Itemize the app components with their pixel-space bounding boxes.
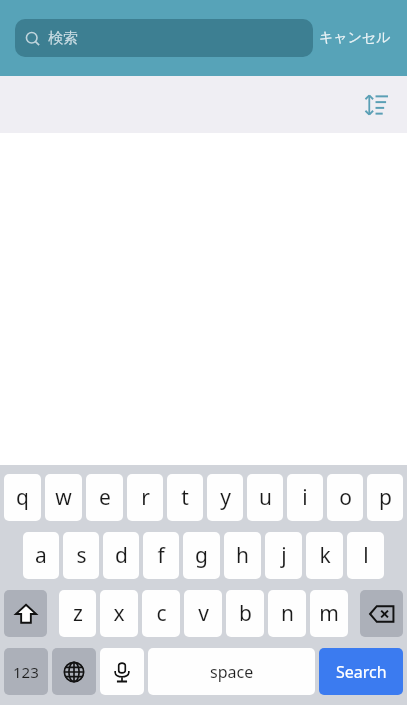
staticText: p (379, 483, 392, 512)
button[interactable]: l (347, 532, 384, 579)
button[interactable]: t (167, 474, 203, 521)
staticText: t (181, 483, 189, 512)
button[interactable]: n (268, 590, 306, 637)
button[interactable]: s (63, 532, 99, 579)
button[interactable]: c (142, 590, 180, 637)
staticText: キャンセル (319, 29, 391, 47)
button[interactable]: m (310, 590, 348, 637)
staticText: d (115, 541, 128, 570)
button[interactable]: k (306, 532, 343, 579)
button[interactable]: q (4, 474, 41, 521)
staticText: g (195, 541, 208, 570)
button[interactable]: e (86, 474, 123, 521)
staticText: k (319, 541, 331, 570)
staticText: q (16, 483, 29, 512)
button[interactable]: o (327, 474, 363, 521)
button[interactable]: f (143, 532, 179, 579)
staticText: u (259, 483, 272, 512)
staticText: b (239, 599, 252, 628)
staticText: i (302, 483, 308, 512)
button[interactable]: h (224, 532, 261, 579)
button[interactable]: y (207, 474, 243, 521)
staticText: a (35, 541, 47, 570)
button[interactable]: Search (319, 648, 403, 695)
button[interactable]: b (226, 590, 264, 637)
staticText: f (157, 541, 165, 570)
button[interactable]: x (100, 590, 138, 637)
staticText: y (220, 483, 231, 512)
staticText: 検索 (48, 29, 78, 48)
button[interactable]: j (265, 532, 302, 579)
button[interactable]: z (59, 590, 96, 637)
button[interactable]: d (103, 532, 139, 579)
button[interactable]: Voice input (100, 648, 144, 695)
button[interactable]: Shift (4, 590, 47, 637)
button[interactable]: Change language (52, 648, 96, 695)
staticText: m (319, 599, 339, 628)
staticText: 123 (13, 662, 39, 682)
staticText: s (76, 541, 87, 570)
button[interactable]: Sort (359, 88, 393, 122)
staticText: n (281, 599, 294, 628)
staticText: e (99, 483, 111, 512)
button[interactable]: 検索 (15, 19, 313, 57)
button[interactable]: g (183, 532, 220, 579)
button[interactable]: space (148, 648, 315, 695)
staticText: x (113, 599, 125, 628)
button[interactable]: p (367, 474, 403, 521)
staticText: w (55, 483, 72, 512)
staticText: j (281, 541, 287, 570)
button[interactable]: キャンセル (319, 29, 391, 47)
staticText: c (156, 599, 167, 628)
button[interactable]: Backspace (360, 590, 403, 637)
staticText: Search (336, 661, 387, 683)
staticText: z (73, 599, 83, 628)
button[interactable]: a (23, 532, 59, 579)
button[interactable]: r (127, 474, 163, 521)
button[interactable]: v (184, 590, 222, 637)
staticText: o (339, 483, 352, 512)
staticText: l (363, 541, 369, 570)
staticText: space (210, 661, 254, 683)
button[interactable]: u (247, 474, 283, 521)
button[interactable]: 123 (4, 648, 48, 695)
staticText: r (141, 483, 150, 512)
staticText: h (236, 541, 249, 570)
button[interactable]: w (45, 474, 82, 521)
staticText: v (198, 599, 209, 628)
button[interactable]: i (287, 474, 323, 521)
